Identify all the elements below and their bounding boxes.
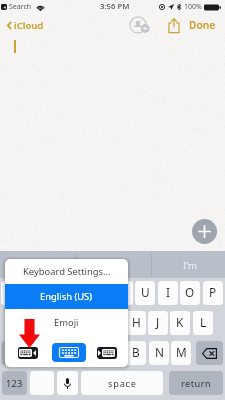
button[interactable]: H	[126, 311, 146, 335]
staticText: O	[185, 284, 195, 300]
button[interactable]: U	[135, 281, 155, 305]
button[interactable]: D	[58, 311, 78, 335]
staticText: N	[155, 344, 164, 360]
staticText: I	[166, 284, 170, 300]
button[interactable]: T	[91, 281, 111, 305]
button[interactable]: Keyboard Settings...	[5, 259, 128, 284]
button[interactable]: Undock keyboard	[18, 347, 38, 359]
button[interactable]: M	[171, 341, 191, 365]
button[interactable]: I	[158, 281, 178, 305]
staticText: E	[53, 284, 60, 300]
button[interactable]: B	[126, 341, 146, 365]
button[interactable]: R	[68, 281, 88, 305]
button[interactable]: 123	[2, 371, 27, 395]
button[interactable]	[196, 341, 223, 365]
button[interactable]	[57, 371, 78, 395]
staticText: Done	[189, 18, 216, 32]
button[interactable]: Add attachment	[192, 219, 217, 244]
staticText: D	[64, 314, 73, 330]
button[interactable]: W	[23, 281, 43, 305]
button[interactable]: P	[203, 281, 223, 305]
button[interactable]: J	[148, 311, 168, 335]
staticText: I'm	[183, 259, 197, 272]
button[interactable]: Done	[188, 15, 217, 35]
staticText: space	[108, 377, 137, 390]
staticText: return	[181, 377, 212, 390]
staticText: U	[141, 284, 150, 300]
staticText: English (US)	[40, 290, 93, 303]
button[interactable]: Emoji	[5, 309, 128, 335]
staticText: 100%	[184, 2, 202, 12]
staticText: P	[209, 284, 217, 300]
button[interactable]: Y	[113, 281, 133, 305]
button[interactable]: Dock keyboard	[97, 347, 117, 359]
staticText: R	[74, 284, 82, 300]
button[interactable]: L	[193, 311, 213, 335]
button[interactable]: S	[36, 311, 56, 335]
staticText: Keyboard Settings...	[23, 265, 111, 278]
button[interactable]: E	[46, 281, 66, 305]
button[interactable]: X	[59, 341, 79, 365]
button[interactable]: A	[14, 311, 34, 335]
staticText: J	[156, 314, 160, 330]
button[interactable]	[1, 341, 28, 365]
button[interactable]: Add people	[130, 17, 150, 33]
staticText: M	[176, 344, 187, 360]
staticText: 3:56 PM	[100, 1, 130, 12]
button[interactable]: return	[169, 371, 223, 395]
button[interactable]: N	[149, 341, 169, 365]
button[interactable]: C	[82, 341, 102, 365]
button[interactable]: Q	[1, 281, 21, 305]
staticText: Emoji	[54, 316, 79, 329]
staticText: X	[66, 344, 73, 360]
staticText: V	[110, 344, 118, 360]
staticText: H	[132, 314, 141, 330]
staticText: K	[176, 314, 184, 330]
staticText: 123	[6, 377, 23, 390]
button[interactable]	[30, 371, 54, 395]
staticText: A	[20, 314, 28, 330]
button[interactable]: English (US)	[5, 284, 128, 309]
button[interactable]: Z	[37, 341, 57, 365]
button[interactable]: space	[81, 371, 163, 395]
staticText: L	[200, 314, 207, 330]
button[interactable]: O	[180, 281, 200, 305]
button[interactable]: Default keyboard	[52, 343, 86, 362]
staticText: Search	[9, 2, 32, 12]
button[interactable]: iCloud	[0, 19, 48, 32]
button[interactable]: V	[104, 341, 124, 365]
button[interactable]: Share	[168, 18, 180, 33]
staticText: iCloud	[14, 19, 44, 32]
button[interactable]: K	[170, 311, 190, 335]
staticText: B	[132, 344, 140, 360]
